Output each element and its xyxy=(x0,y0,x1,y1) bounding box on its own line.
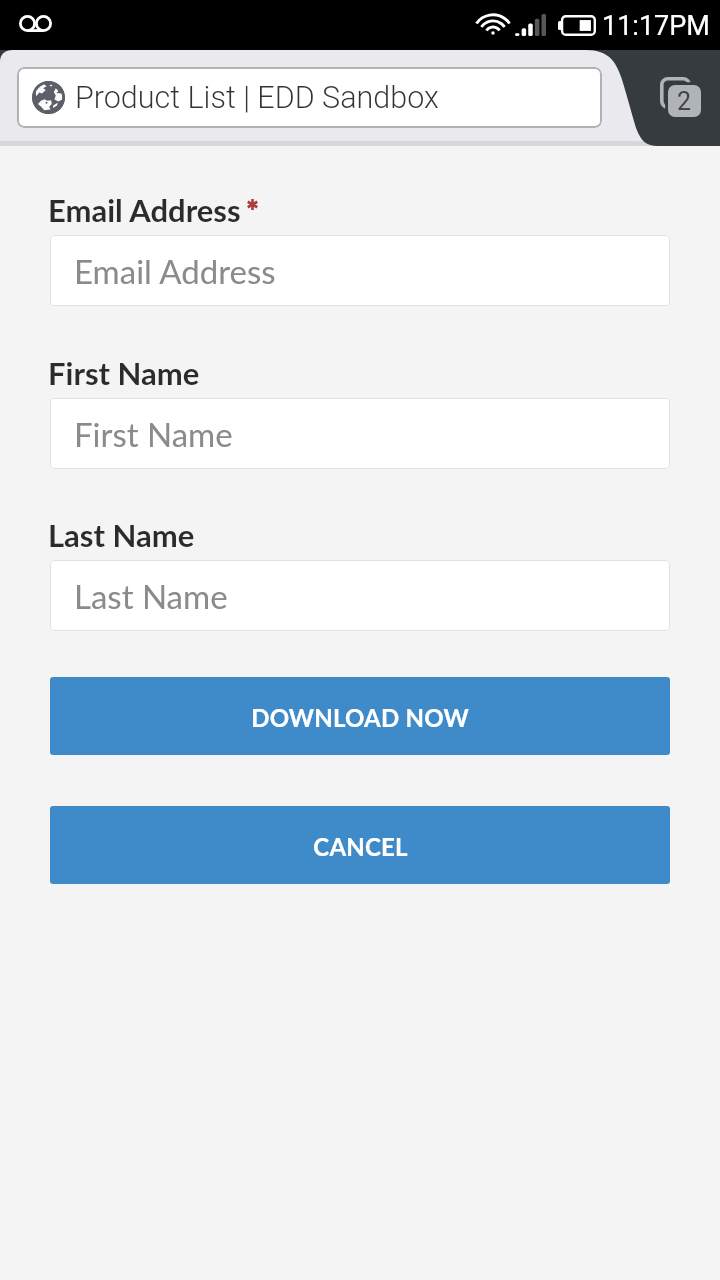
button[interactable]: First Name xyxy=(50,398,670,469)
staticText: First Name xyxy=(48,354,200,391)
staticText: Email Address xyxy=(74,251,276,291)
staticText: 11:17PM xyxy=(602,10,710,42)
staticText: 2 xyxy=(677,87,692,116)
staticText: First Name xyxy=(74,414,233,454)
button[interactable]: CANCEL xyxy=(50,806,670,884)
staticText: DOWNLOAD NOW xyxy=(251,703,469,732)
staticText: CANCEL xyxy=(313,832,408,861)
button[interactable]: Tabs, 2 open xyxy=(660,77,701,117)
staticText: Product List | EDD Sandbox xyxy=(75,80,439,116)
staticText: Last Name xyxy=(48,516,195,553)
button[interactable]: DOWNLOAD NOW xyxy=(50,677,670,755)
button[interactable]: Product List | EDD Sandbox xyxy=(17,67,602,128)
staticText: Email Address xyxy=(48,191,241,228)
button[interactable]: Email Address xyxy=(50,235,670,306)
staticText: Last Name xyxy=(74,576,228,616)
button[interactable]: Last Name xyxy=(50,560,670,631)
